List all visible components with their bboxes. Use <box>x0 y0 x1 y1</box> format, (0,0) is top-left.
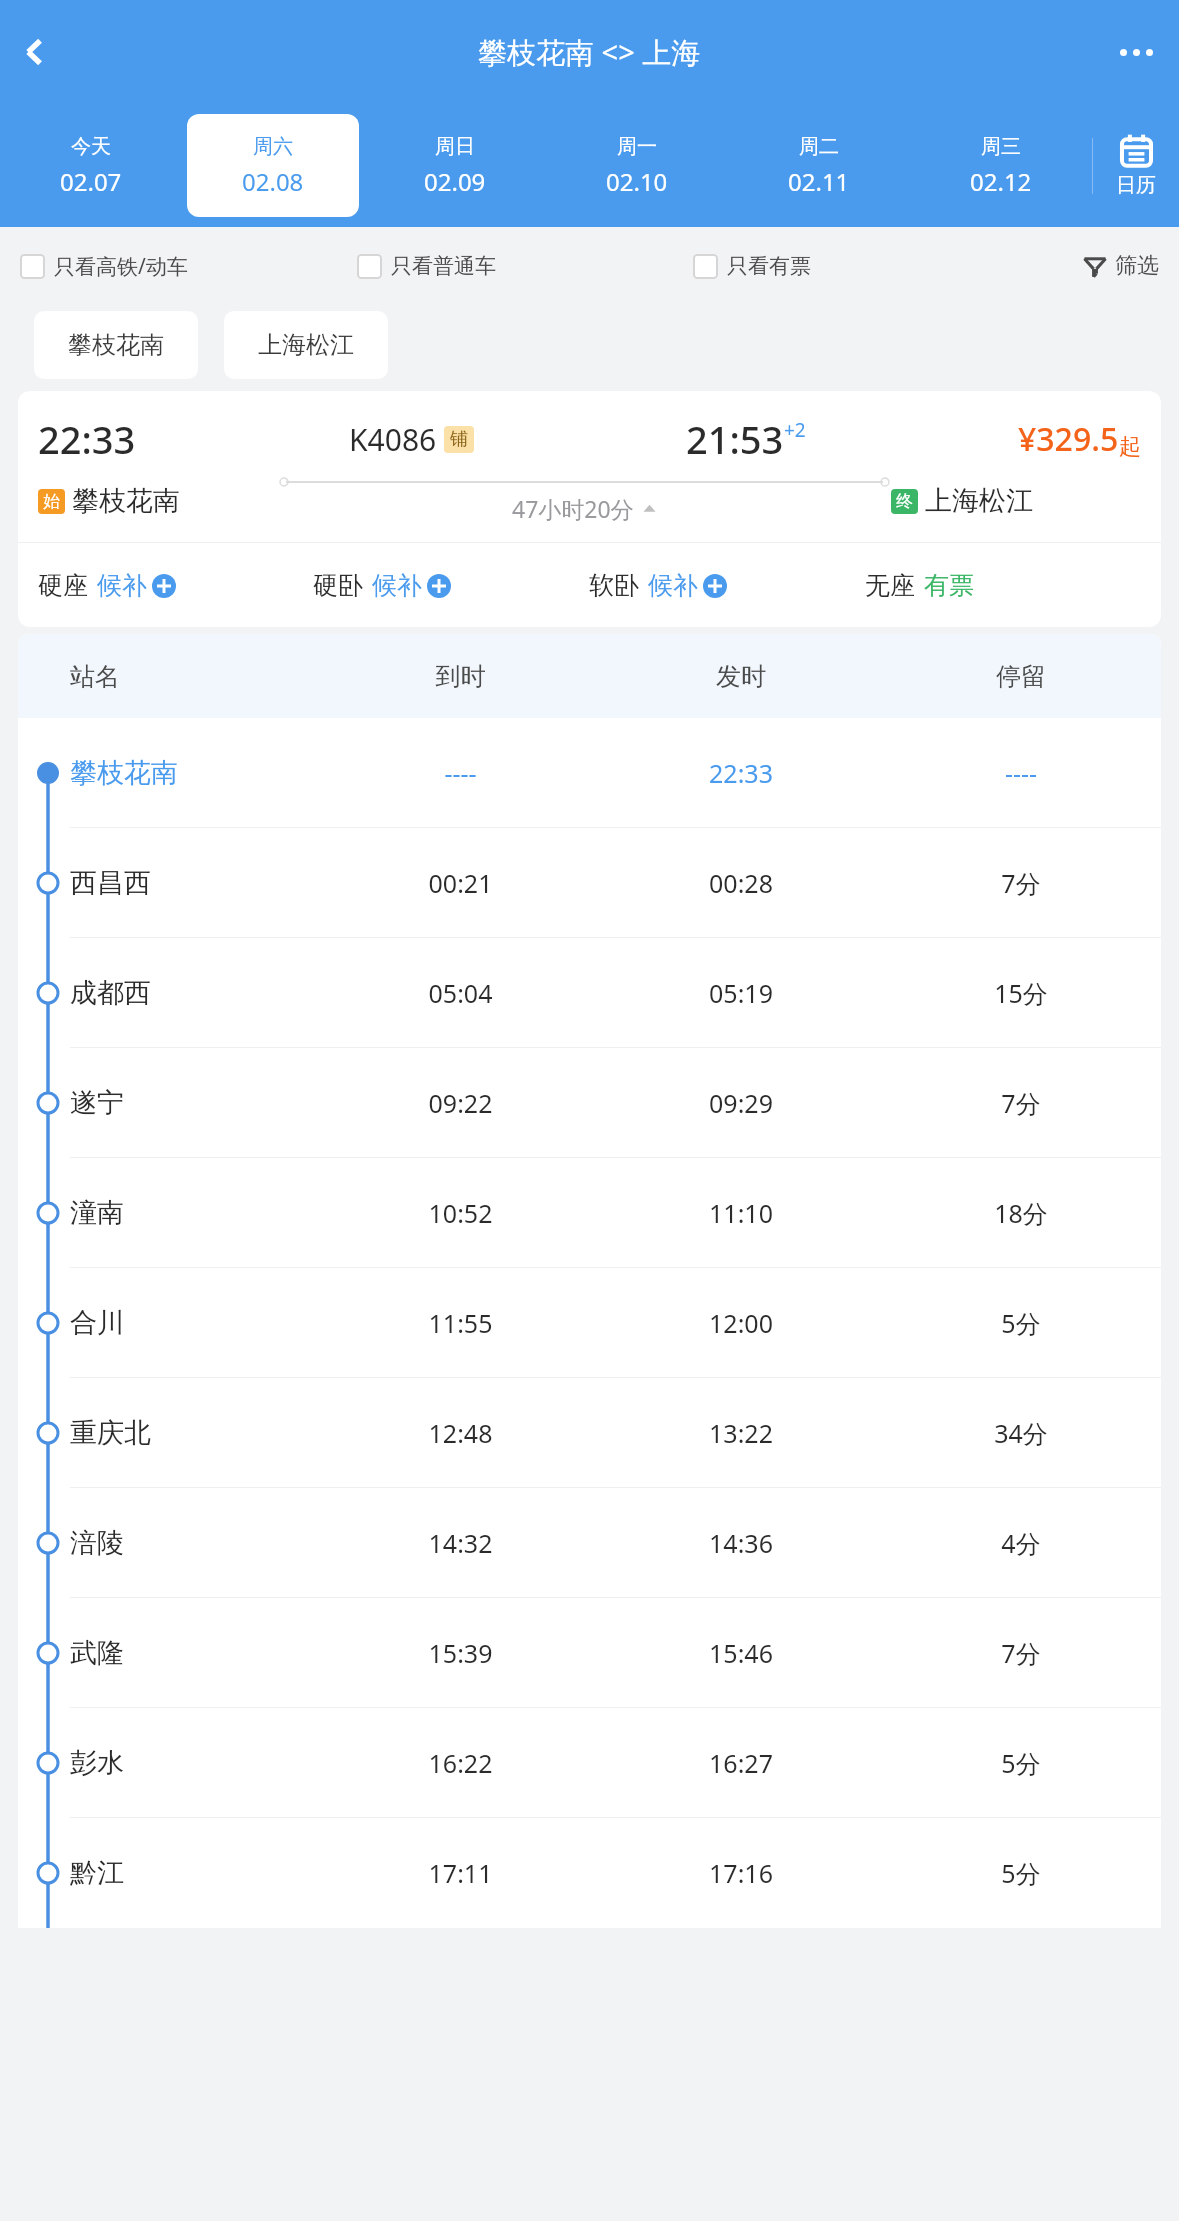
staticText: 发时 <box>601 661 881 692</box>
staticText: 02.11 <box>788 165 850 198</box>
button[interactable]: 硬卧 <box>313 570 589 601</box>
staticText: 7分 <box>881 866 1161 900</box>
staticText: 02.07 <box>60 165 122 198</box>
staticText: 铺 <box>450 428 468 451</box>
button[interactable]: 成都西 <box>18 938 1161 1048</box>
button[interactable]: 只看有票 <box>693 227 1029 305</box>
staticText: 遂宁 <box>70 1086 320 1120</box>
staticText: 彭水 <box>70 1746 320 1780</box>
staticText: 重庆北 <box>70 1416 320 1450</box>
staticText: 只看高铁/动车 <box>54 252 188 281</box>
staticText: 05:04 <box>320 976 601 1010</box>
button[interactable]: 周二 <box>733 114 905 217</box>
staticText: 14:32 <box>320 1526 601 1560</box>
staticText: K4086 <box>349 419 437 460</box>
staticText: 筛选 <box>1115 252 1159 280</box>
staticText: 上海松江 <box>925 484 1033 518</box>
staticText: 攀枝花南 <box>68 330 164 360</box>
button[interactable]: 遂宁 <box>18 1048 1161 1158</box>
button[interactable]: Back <box>6 23 64 81</box>
button[interactable]: 彭水 <box>18 1708 1161 1818</box>
staticText: 12:48 <box>320 1416 601 1450</box>
staticText: ---- <box>881 756 1161 790</box>
button[interactable]: 周六 <box>187 114 359 217</box>
staticText: 周六 <box>253 134 293 159</box>
button[interactable]: 西昌西 <box>18 828 1161 938</box>
staticText: 周一 <box>617 134 657 159</box>
staticText: 到时 <box>320 661 601 692</box>
button[interactable]: 周日 <box>369 114 541 217</box>
staticText: 15:39 <box>320 1636 601 1670</box>
button[interactable]: 只看高铁/动车 <box>20 227 357 305</box>
staticText: 软卧 <box>589 570 639 601</box>
button[interactable]: 武隆 <box>18 1598 1161 1708</box>
staticText: 周三 <box>981 134 1021 159</box>
staticText: ---- <box>320 756 601 790</box>
staticText: 00:21 <box>320 866 601 900</box>
staticText: 21:53 <box>686 413 784 465</box>
button[interactable]: 涪陵 <box>18 1488 1161 1598</box>
button[interactable]: 重庆北 <box>18 1378 1161 1488</box>
staticText: 17:16 <box>601 1856 881 1890</box>
button[interactable]: 合川 <box>18 1268 1161 1378</box>
staticText: 09:29 <box>601 1086 881 1120</box>
staticText: 武隆 <box>70 1636 320 1670</box>
staticText: 11:10 <box>601 1196 881 1230</box>
staticText: 始 <box>43 491 60 512</box>
button[interactable]: 软卧 <box>589 570 865 601</box>
staticText: 7分 <box>881 1086 1161 1120</box>
button[interactable]: 只看普通车 <box>357 227 693 305</box>
staticText: 16:22 <box>320 1746 601 1780</box>
staticText: 西昌西 <box>70 866 320 900</box>
staticText: 攀枝花南 <> 上海 <box>478 32 701 72</box>
staticText: 10:52 <box>320 1196 601 1230</box>
staticText: 12:00 <box>601 1306 881 1340</box>
staticText: 18分 <box>881 1196 1161 1230</box>
button[interactable]: 硬座 <box>38 570 313 601</box>
staticText: 候补 <box>372 570 422 601</box>
button[interactable]: Calendar <box>1093 104 1179 227</box>
staticText: +2 <box>784 417 806 443</box>
staticText: 17:11 <box>320 1856 601 1890</box>
button[interactable]: 攀枝花南 <box>18 718 1161 828</box>
staticText: 5分 <box>881 1856 1161 1890</box>
staticText: 停留 <box>881 661 1161 692</box>
button[interactable]: 无座 <box>865 570 1141 601</box>
staticText: 终 <box>896 491 913 512</box>
button[interactable]: 周三 <box>915 114 1087 217</box>
staticText: 22:33 <box>601 756 881 790</box>
staticText: 02.08 <box>242 165 304 198</box>
staticText: 周二 <box>799 134 839 159</box>
staticText: 14:36 <box>601 1526 881 1560</box>
button[interactable]: 周一 <box>551 114 723 217</box>
staticText: 周日 <box>435 134 475 159</box>
staticText: 16:27 <box>601 1746 881 1780</box>
staticText: 涪陵 <box>70 1526 320 1560</box>
staticText: 成都西 <box>70 976 320 1010</box>
staticText: 47小时20分 <box>512 493 634 524</box>
button[interactable]: 潼南 <box>18 1158 1161 1268</box>
staticText: 13:22 <box>601 1416 881 1450</box>
staticText: 09:22 <box>320 1086 601 1120</box>
staticText: 合川 <box>70 1306 320 1340</box>
staticText: 只看普通车 <box>391 253 496 279</box>
staticText: 4分 <box>881 1526 1161 1560</box>
staticText: 只看有票 <box>727 253 811 279</box>
staticText: 5分 <box>881 1746 1161 1780</box>
staticText: 上海松江 <box>258 330 354 360</box>
staticText: 今天 <box>71 134 111 159</box>
staticText: 日历 <box>1116 173 1156 198</box>
button[interactable]: 22:33 <box>18 391 1161 627</box>
button[interactable]: 筛选 <box>1029 227 1159 305</box>
staticText: 无座 <box>865 570 915 601</box>
button[interactable]: 上海松江 <box>224 311 388 379</box>
staticText: 攀枝花南 <box>70 756 320 790</box>
button[interactable]: 攀枝花南 <box>34 311 198 379</box>
button[interactable]: More options <box>1107 23 1165 81</box>
staticText: 黔江 <box>70 1856 320 1890</box>
button[interactable]: 黔江 <box>18 1818 1161 1928</box>
staticText: 22:33 <box>38 413 136 465</box>
staticText: 02.09 <box>424 165 486 198</box>
button[interactable]: 今天 <box>5 114 177 217</box>
staticText: 潼南 <box>70 1196 320 1230</box>
